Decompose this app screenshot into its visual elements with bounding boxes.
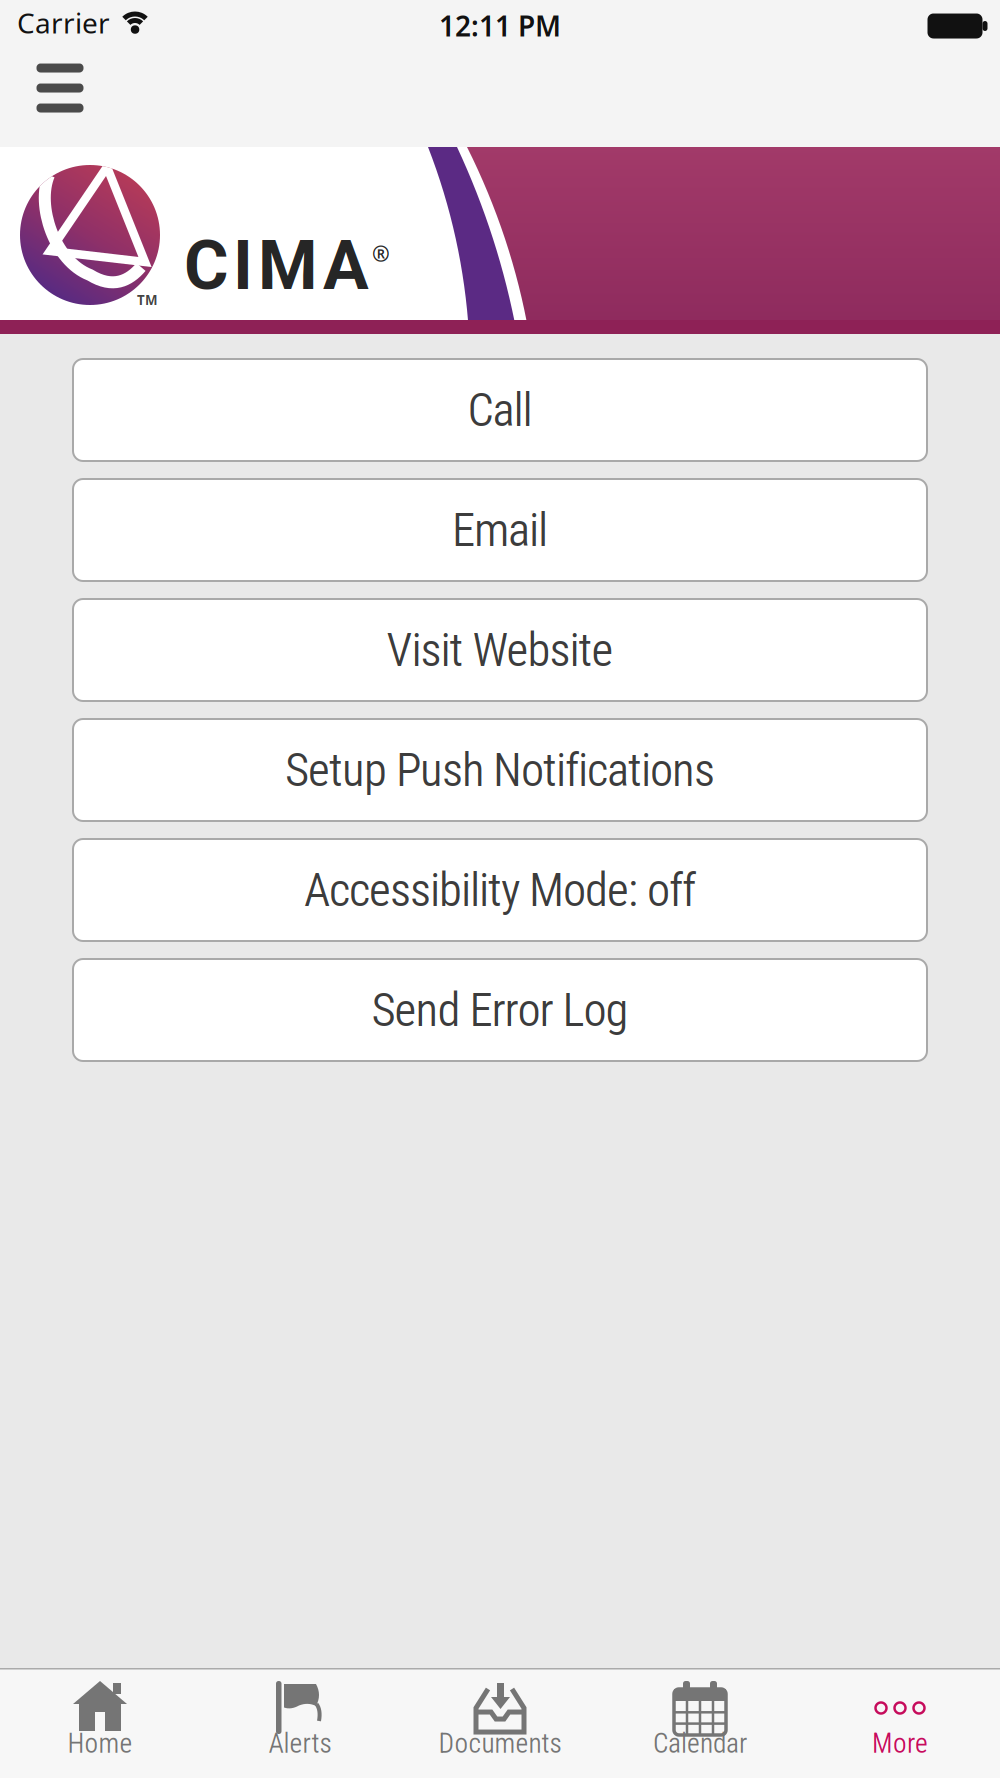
staticText: 12:11 PM <box>439 7 561 44</box>
staticText: Call <box>467 383 532 437</box>
button[interactable]: Menu <box>25 53 95 123</box>
staticText: Accessibility Mode: off <box>304 863 696 917</box>
staticText: Documents <box>438 1727 561 1759</box>
staticText: Send Error Log <box>371 983 628 1037</box>
staticText: ® <box>372 239 390 267</box>
button[interactable]: Documents <box>400 1668 600 1778</box>
button[interactable]: Setup Push Notifications <box>73 719 927 821</box>
button[interactable]: Alerts <box>200 1668 400 1778</box>
button[interactable]: Email <box>73 479 927 581</box>
staticText: Home <box>67 1727 132 1759</box>
button[interactable]: Accessibility Mode: off <box>73 839 927 941</box>
button[interactable]: Visit Website <box>73 599 927 701</box>
staticText: Email <box>452 503 548 557</box>
button[interactable]: More <box>800 1668 1000 1778</box>
staticText: Visit Website <box>386 623 613 677</box>
button[interactable]: Send Error Log <box>73 959 927 1061</box>
staticText: Calendar <box>653 1727 747 1759</box>
staticText: TM <box>137 291 158 309</box>
staticText: Setup Push Notifications <box>285 743 715 797</box>
staticText: CIMA <box>184 226 369 306</box>
button[interactable]: Call <box>73 359 927 461</box>
button[interactable]: Calendar <box>600 1668 800 1778</box>
button[interactable]: Home <box>0 1668 200 1778</box>
staticText: More <box>872 1727 928 1759</box>
staticText: Carrier <box>17 4 110 41</box>
staticText: Alerts <box>268 1727 331 1759</box>
